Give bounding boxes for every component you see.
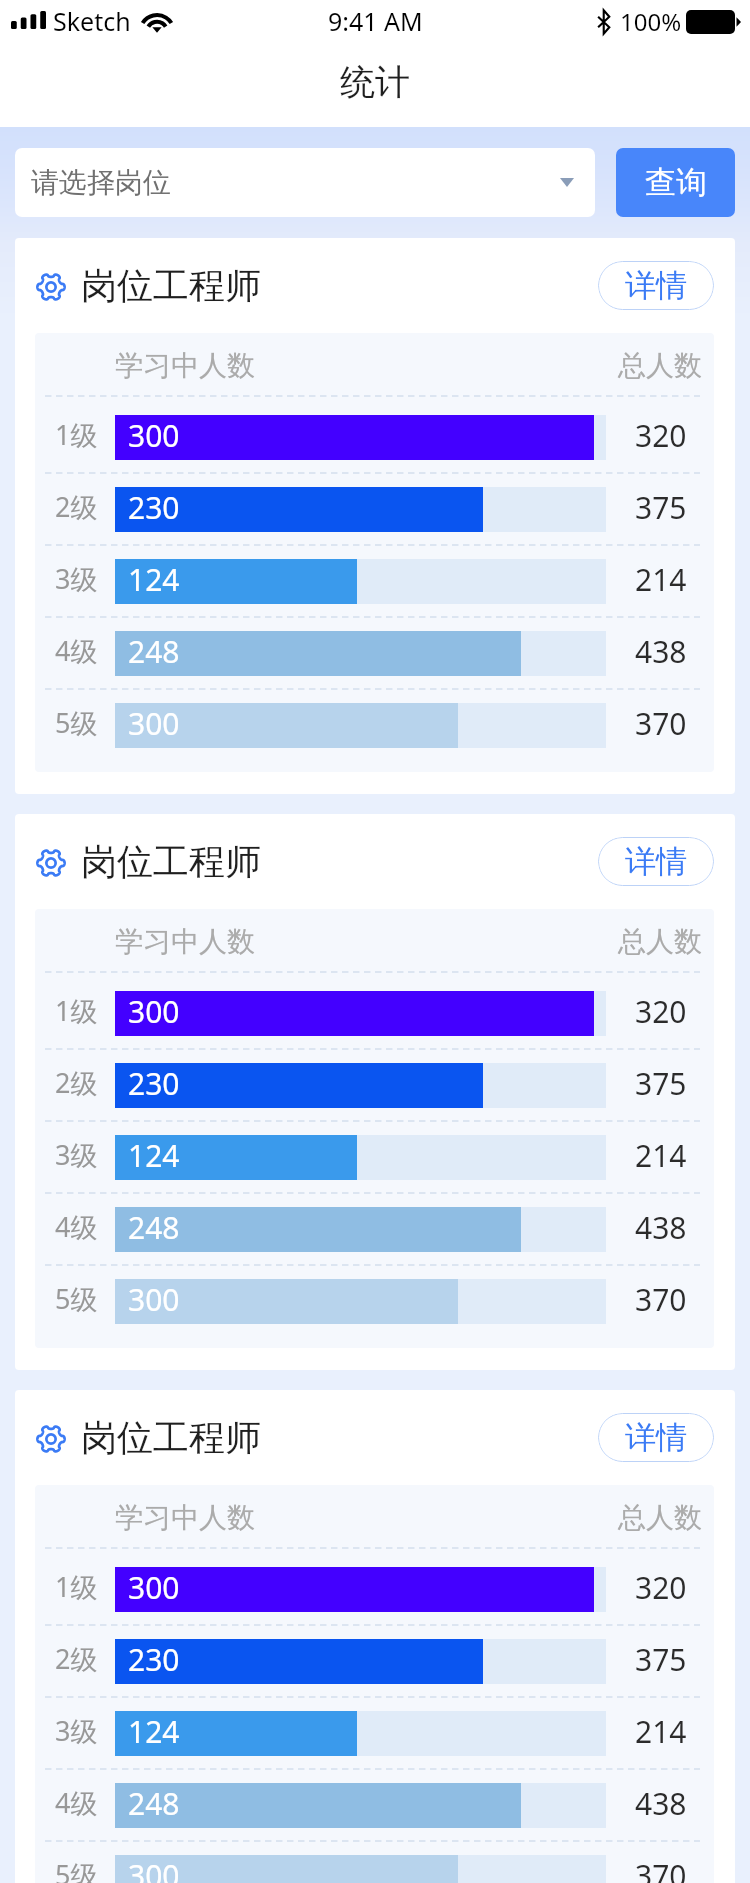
button[interactable]: 请选择岗位 xyxy=(15,148,595,217)
staticText: 3级 xyxy=(55,560,98,597)
staticText: 5级 xyxy=(55,1280,98,1317)
staticText: 1级 xyxy=(55,416,98,453)
button[interactable]: 详情 xyxy=(598,1413,714,1462)
staticText: 300 xyxy=(128,991,180,1032)
other: Settings xyxy=(35,271,67,303)
staticText: 300 xyxy=(128,1855,180,1883)
staticText: 3级 xyxy=(55,1712,98,1749)
staticText: 300 xyxy=(128,1567,180,1608)
staticText: 2级 xyxy=(55,488,98,525)
staticText: 214 xyxy=(635,1711,687,1752)
staticText: 300 xyxy=(128,415,180,456)
staticText: 320 xyxy=(635,991,687,1032)
staticText: 1级 xyxy=(55,992,98,1029)
staticText: 查询 xyxy=(645,163,707,202)
staticText: 总人数 xyxy=(618,348,702,383)
staticText: 2级 xyxy=(55,1640,98,1677)
staticText: 214 xyxy=(635,559,687,600)
staticText: 学习中人数 xyxy=(115,924,255,959)
staticText: 详情 xyxy=(625,1418,687,1457)
staticText: 370 xyxy=(635,1279,687,1320)
staticText: 124 xyxy=(128,1711,180,1752)
staticText: 370 xyxy=(635,703,687,744)
staticText: 4级 xyxy=(55,1784,98,1821)
staticText: 详情 xyxy=(625,266,687,305)
staticText: 100% xyxy=(620,5,682,38)
staticText: 请选择岗位 xyxy=(31,165,171,200)
staticText: 岗位工程师 xyxy=(81,263,261,308)
other: Settings xyxy=(35,1423,67,1455)
staticText: 岗位工程师 xyxy=(81,839,261,884)
staticText: Sketch xyxy=(53,4,131,38)
staticText: 248 xyxy=(128,1783,180,1824)
staticText: 4级 xyxy=(55,1208,98,1245)
staticText: 详情 xyxy=(625,842,687,881)
other: Settings xyxy=(35,847,67,879)
staticText: 9:41 AM xyxy=(328,4,423,38)
button[interactable]: 详情 xyxy=(598,261,714,310)
staticText: 438 xyxy=(635,1783,687,1824)
staticText: 3级 xyxy=(55,1136,98,1173)
staticText: 230 xyxy=(128,1063,180,1104)
staticText: 230 xyxy=(128,487,180,528)
staticText: 375 xyxy=(635,487,687,528)
staticText: 438 xyxy=(635,631,687,672)
staticText: 124 xyxy=(128,1135,180,1176)
staticText: 300 xyxy=(128,1279,180,1320)
staticText: 学习中人数 xyxy=(115,348,255,383)
staticText: 总人数 xyxy=(618,1500,702,1535)
staticText: 230 xyxy=(128,1639,180,1680)
staticText: 248 xyxy=(128,631,180,672)
staticText: 375 xyxy=(635,1639,687,1680)
staticText: 总人数 xyxy=(618,924,702,959)
staticText: 248 xyxy=(128,1207,180,1248)
staticText: 2级 xyxy=(55,1064,98,1101)
staticText: 学习中人数 xyxy=(115,1500,255,1535)
staticText: 5级 xyxy=(55,704,98,741)
staticText: 320 xyxy=(635,415,687,456)
button[interactable]: 查询 xyxy=(616,148,735,217)
button[interactable]: 详情 xyxy=(598,837,714,886)
staticText: 统计 xyxy=(340,60,410,104)
staticText: 214 xyxy=(635,1135,687,1176)
staticText: 4级 xyxy=(55,632,98,669)
staticText: 岗位工程师 xyxy=(81,1415,261,1460)
staticText: 320 xyxy=(635,1567,687,1608)
staticText: 1级 xyxy=(55,1568,98,1605)
staticText: 438 xyxy=(635,1207,687,1248)
staticText: 300 xyxy=(128,703,180,744)
staticText: 5级 xyxy=(55,1856,98,1883)
staticText: 375 xyxy=(635,1063,687,1104)
staticText: 124 xyxy=(128,559,180,600)
staticText: 370 xyxy=(635,1855,687,1883)
